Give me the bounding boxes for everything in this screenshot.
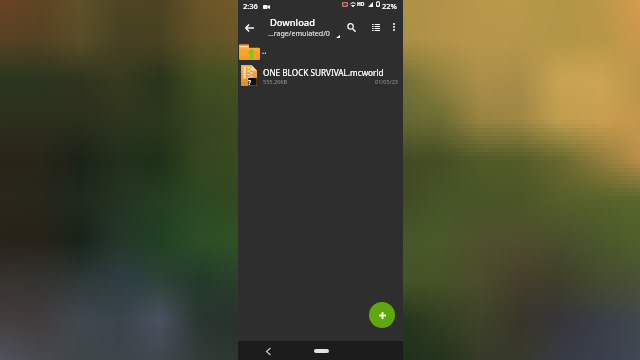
button[interactable]: Add [369, 302, 395, 328]
button[interactable]: ? [238, 64, 403, 90]
button[interactable]: Back [261, 344, 275, 358]
staticText: 2:36 [243, 1, 258, 11]
staticText: 555.20KB [263, 78, 288, 85]
button[interactable]: .. [238, 42, 403, 64]
staticText: ...rage/emulated/0 [268, 28, 330, 38]
button[interactable]: More options [386, 19, 402, 35]
staticText: HD [357, 1, 365, 8]
staticText: ? [248, 78, 252, 87]
staticText: 01/05/23 [375, 78, 398, 85]
staticText: Download [270, 16, 315, 29]
button[interactable]: Change view [367, 19, 384, 36]
staticText: 22% [382, 1, 397, 11]
button[interactable]: Home [314, 349, 329, 353]
button[interactable]: Search [343, 19, 360, 36]
button[interactable]: Navigate up [240, 19, 258, 37]
staticText: ONE BLOCK SURVIVAL.mcworld [263, 67, 384, 78]
staticText: .. [262, 45, 267, 56]
